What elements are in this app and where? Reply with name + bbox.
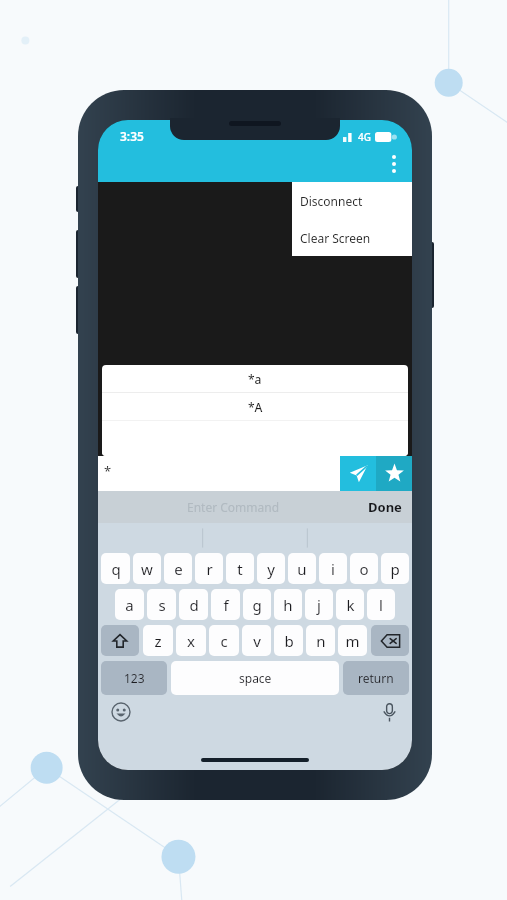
button[interactable]: a bbox=[115, 589, 144, 620]
staticText: 123 bbox=[124, 670, 145, 686]
button[interactable]: Voice input bbox=[376, 699, 402, 725]
staticText: s bbox=[158, 595, 166, 615]
staticText: y bbox=[267, 559, 275, 579]
button[interactable]: *a bbox=[102, 365, 408, 392]
staticText: i bbox=[331, 559, 335, 579]
button[interactable]: j bbox=[305, 589, 333, 620]
button[interactable]: s bbox=[147, 589, 176, 620]
button[interactable]: Backspace bbox=[371, 625, 409, 656]
button[interactable]: * bbox=[98, 456, 340, 491]
staticText: n bbox=[316, 631, 326, 651]
staticText: q bbox=[111, 559, 121, 579]
staticText: z bbox=[154, 631, 162, 651]
staticText: m bbox=[345, 631, 360, 651]
staticText: space bbox=[239, 670, 272, 686]
staticText: g bbox=[252, 595, 262, 615]
button[interactable]: Emoji bbox=[108, 699, 134, 725]
staticText: * bbox=[104, 462, 112, 480]
staticText: h bbox=[283, 595, 293, 615]
button[interactable]: b bbox=[274, 625, 303, 656]
button[interactable]: u bbox=[288, 553, 316, 584]
button[interactable]: f bbox=[211, 589, 240, 620]
button[interactable]: Done bbox=[368, 498, 402, 516]
staticText: o bbox=[359, 559, 369, 579]
staticText: f bbox=[223, 595, 229, 615]
button[interactable]: return bbox=[343, 661, 409, 695]
staticText: p bbox=[390, 559, 400, 579]
button[interactable]: t bbox=[226, 553, 254, 584]
button[interactable]: *A bbox=[102, 393, 408, 420]
staticText: 3:35 bbox=[120, 128, 144, 144]
button[interactable]: z bbox=[143, 625, 173, 656]
button[interactable]: x bbox=[176, 625, 206, 656]
staticText: k bbox=[346, 595, 355, 615]
button[interactable]: v bbox=[242, 625, 271, 656]
staticText: b bbox=[284, 631, 294, 651]
button[interactable]: w bbox=[133, 553, 161, 584]
staticText: Done bbox=[368, 498, 402, 516]
staticText: w bbox=[141, 559, 153, 579]
button[interactable]: space bbox=[171, 661, 339, 695]
staticText: Disconnect bbox=[300, 193, 363, 209]
staticText: d bbox=[189, 595, 199, 615]
staticText: u bbox=[297, 559, 307, 579]
button[interactable]: h bbox=[274, 589, 302, 620]
staticText: x bbox=[187, 631, 195, 651]
button[interactable]: e bbox=[164, 553, 192, 584]
staticText: j bbox=[317, 595, 321, 615]
button[interactable]: Send bbox=[340, 456, 376, 491]
staticText: r bbox=[206, 559, 213, 579]
button[interactable]: m bbox=[338, 625, 367, 656]
staticText: e bbox=[174, 559, 183, 579]
button[interactable]: Clear Screen bbox=[292, 219, 412, 256]
button[interactable]: d bbox=[179, 589, 208, 620]
button[interactable]: c bbox=[209, 625, 239, 656]
button[interactable]: Favorite bbox=[376, 456, 412, 491]
button[interactable]: o bbox=[350, 553, 378, 584]
button[interactable]: r bbox=[195, 553, 223, 584]
staticText: v bbox=[253, 631, 261, 651]
button[interactable]: Disconnect bbox=[292, 182, 412, 219]
button[interactable]: k bbox=[336, 589, 364, 620]
button[interactable]: g bbox=[243, 589, 271, 620]
staticText: Clear Screen bbox=[300, 230, 371, 246]
staticText: l bbox=[379, 595, 383, 615]
button[interactable]: Shift bbox=[101, 625, 139, 656]
button[interactable]: i bbox=[319, 553, 347, 584]
staticText: 4G bbox=[358, 130, 371, 144]
button[interactable]: q bbox=[101, 553, 130, 584]
staticText: t bbox=[237, 559, 243, 579]
staticText: a bbox=[125, 595, 134, 615]
staticText: return bbox=[358, 670, 394, 686]
button[interactable]: p bbox=[381, 553, 409, 584]
button[interactable]: y bbox=[257, 553, 285, 584]
staticText: *A bbox=[248, 399, 263, 415]
button[interactable]: l bbox=[367, 589, 395, 620]
button[interactable]: More options bbox=[376, 146, 412, 182]
button[interactable]: 123 bbox=[101, 661, 167, 695]
staticText: c bbox=[220, 631, 228, 651]
staticText: *a bbox=[248, 371, 262, 387]
button[interactable]: n bbox=[306, 625, 335, 656]
staticText: Enter Command bbox=[187, 499, 280, 515]
